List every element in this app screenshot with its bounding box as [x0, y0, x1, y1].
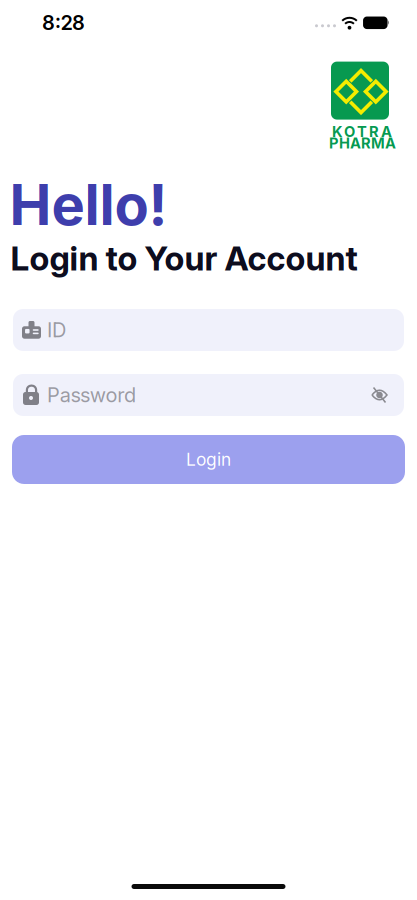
staticText: Login [186, 449, 231, 470]
staticText: ID [47, 318, 66, 342]
staticText: KOTRA [332, 123, 392, 140]
staticText: Login to Your Account [10, 239, 357, 278]
button[interactable]: Login [12, 435, 405, 484]
staticText: Hello! [9, 172, 167, 238]
staticText: 8:28 [42, 11, 85, 35]
button[interactable]: Show password [371, 387, 404, 403]
button[interactable]: Password [13, 374, 404, 416]
button[interactable]: ID [13, 309, 404, 351]
staticText: Password [47, 383, 136, 407]
staticText: PHARMA [329, 135, 396, 152]
